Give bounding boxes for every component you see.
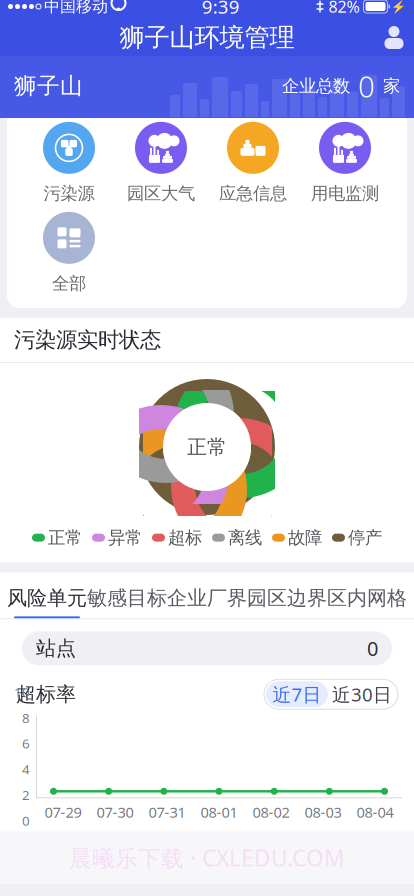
button[interactable]: 园区大气: [115, 118, 207, 208]
staticText: 离线: [228, 527, 262, 548]
staticText: 08-03: [304, 802, 341, 822]
button[interactable]: 近30日: [328, 681, 396, 707]
staticText: 0: [367, 635, 378, 662]
staticText: 污染源实时状态: [14, 327, 161, 353]
staticText: 2: [22, 786, 30, 804]
staticText: 07-29: [44, 802, 81, 822]
staticText: 污染源: [43, 183, 94, 204]
staticText: 故障: [288, 527, 322, 548]
staticText: 9:39: [202, 0, 240, 19]
staticText: 08-02: [252, 802, 289, 822]
button[interactable]: 企业厂界: [167, 572, 247, 618]
staticText: 08-01: [200, 802, 237, 822]
staticText: 超标率: [16, 682, 76, 707]
staticText: 晨曦乐下载 · CXLEDU.COM: [69, 843, 345, 873]
staticText: 用电监测: [311, 183, 379, 204]
staticText: 82%: [328, 0, 359, 17]
staticText: 狮子山环境管理: [119, 22, 294, 53]
staticText: 园区边界: [247, 586, 327, 610]
staticText: 正常: [48, 527, 82, 548]
button[interactable]: 敏感目标: [87, 572, 167, 618]
staticText: 狮子山: [14, 72, 83, 100]
staticText: 企业厂界: [167, 586, 247, 610]
staticText: 全部: [52, 273, 86, 294]
staticText: 超标: [168, 527, 202, 548]
staticText: 区内网格: [327, 586, 407, 610]
staticText: 家: [383, 75, 400, 97]
staticText: 08-04: [356, 802, 393, 822]
button[interactable]: 全部: [23, 208, 115, 298]
button[interactable]: 区内网格: [327, 572, 407, 618]
staticText: 近7日: [272, 682, 321, 707]
staticText: 站点: [36, 636, 76, 661]
staticText: 近30日: [332, 682, 392, 707]
staticText: 中国移动: [44, 0, 108, 16]
staticText: 07-31: [148, 802, 185, 822]
staticText: 正常: [187, 435, 227, 459]
button[interactable]: 用电监测: [299, 118, 391, 208]
staticText: 企业总数: [282, 75, 350, 97]
staticText: 敏感目标: [87, 586, 167, 610]
staticText: 10: [14, 683, 30, 701]
staticText: 0: [350, 66, 383, 105]
button[interactable]: 个人中心: [374, 17, 414, 57]
staticText: 07-30: [96, 802, 133, 822]
staticText: 6: [22, 735, 30, 752]
staticText: 异常: [108, 527, 142, 548]
staticText: ⚡: [391, 0, 406, 13]
staticText: 4: [22, 760, 30, 778]
staticText: 8: [22, 709, 30, 727]
button[interactable]: 应急信息: [207, 118, 299, 208]
button[interactable]: 风险单元: [7, 572, 87, 618]
staticText: 0: [22, 812, 30, 829]
staticText: 停产: [348, 527, 382, 548]
staticText: 风险单元: [7, 586, 87, 610]
button[interactable]: 近7日: [266, 681, 328, 707]
staticText: 园区大气: [127, 183, 195, 204]
button[interactable]: 园区边界: [247, 572, 327, 618]
staticText: 应急信息: [219, 183, 287, 204]
button[interactable]: 污染源: [23, 118, 115, 208]
